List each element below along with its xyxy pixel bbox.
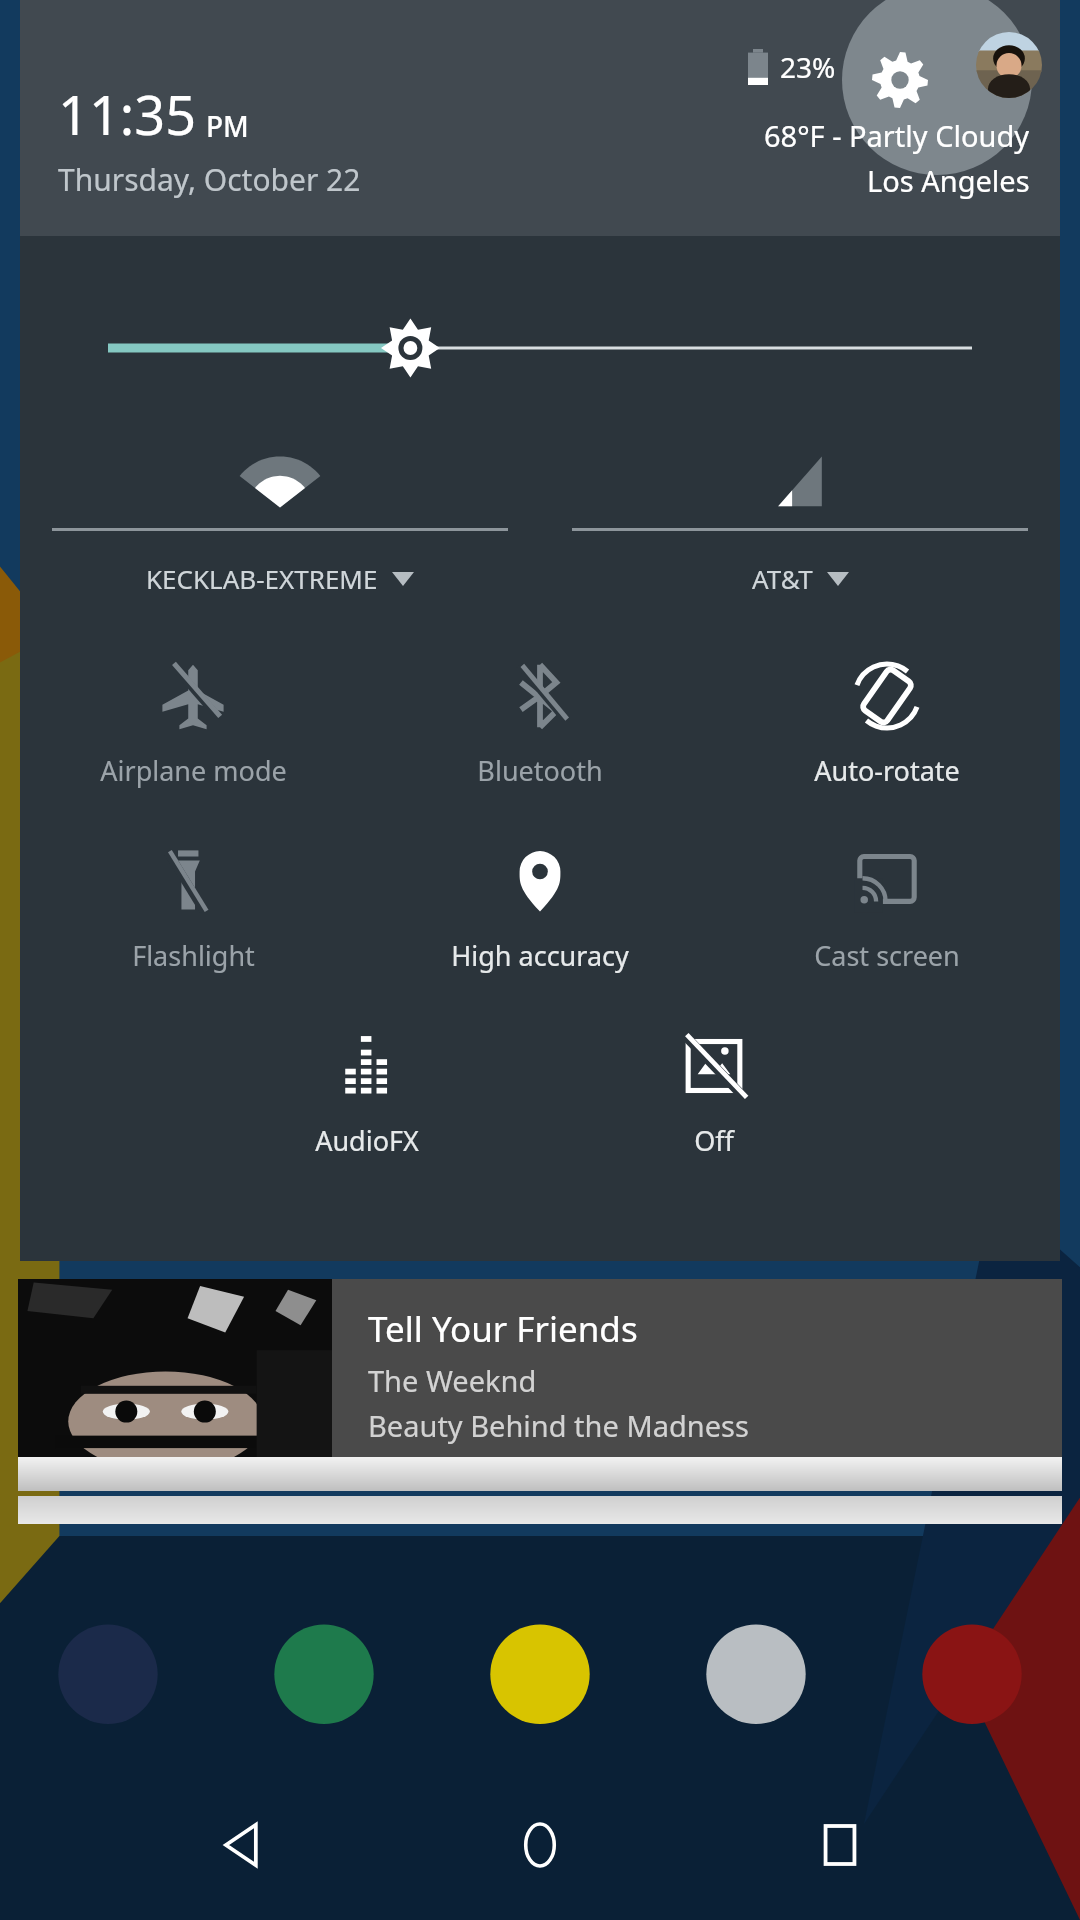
button[interactable]: Airplane mode xyxy=(68,662,318,789)
staticText: 11:35 xyxy=(58,77,197,151)
staticText: AT&T xyxy=(752,561,813,596)
staticText: PM xyxy=(206,107,249,145)
staticText: Off xyxy=(694,1122,734,1159)
staticText: Thursday, October 22 xyxy=(58,159,361,200)
button[interactable]: Home xyxy=(480,1785,600,1905)
button[interactable]: Settings xyxy=(858,38,942,122)
staticText: Bluetooth xyxy=(477,752,603,789)
button[interactable]: Tell Your Friends xyxy=(18,1279,1062,1457)
staticText: Cast screen xyxy=(814,937,960,974)
button[interactable]: High accuracy xyxy=(415,847,665,974)
button[interactable]: Brightness xyxy=(20,318,1060,378)
button[interactable]: Auto-rotate xyxy=(762,662,1012,789)
staticText: Beauty Behind the Madness xyxy=(368,1406,749,1445)
button[interactable]: Back xyxy=(180,1785,300,1905)
staticText: High accuracy xyxy=(451,937,629,974)
button[interactable]: Recent apps xyxy=(780,1785,900,1905)
button[interactable]: AudioFX xyxy=(242,1032,492,1159)
staticText: 23% xyxy=(780,48,836,86)
staticText: Auto-rotate xyxy=(814,752,960,789)
button[interactable]: Cast screen xyxy=(762,847,1012,974)
staticText: Tell Your Friends xyxy=(368,1305,638,1353)
button[interactable]: KECKLAB-EXTREME xyxy=(38,450,522,596)
staticText: Flashlight xyxy=(132,937,255,974)
button[interactable]: Off xyxy=(589,1032,839,1159)
button[interactable]: AT&T xyxy=(558,450,1042,596)
staticText: Los Angeles xyxy=(867,161,1030,200)
staticText: 68°F - Partly Cloudy xyxy=(764,116,1030,155)
button[interactable]: User profile xyxy=(976,32,1042,98)
button[interactable]: Bluetooth xyxy=(415,662,665,789)
staticText: The Weeknd xyxy=(368,1361,537,1400)
staticText: AudioFX xyxy=(315,1122,419,1159)
staticText: KECKLAB-EXTREME xyxy=(146,561,378,596)
button[interactable]: Flashlight xyxy=(68,847,318,974)
staticText: Airplane mode xyxy=(100,752,287,789)
